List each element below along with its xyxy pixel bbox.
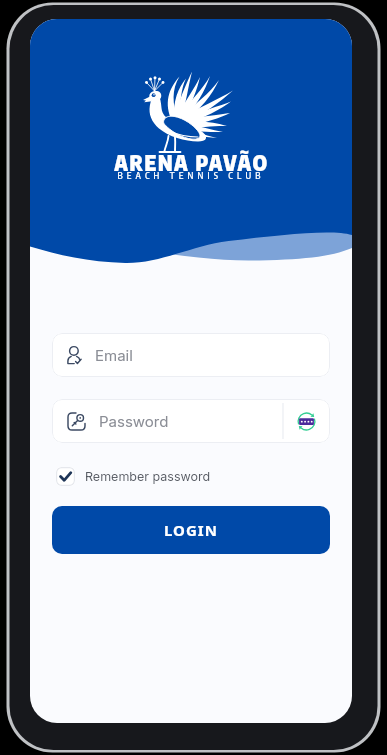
staticText: Password (99, 412, 169, 430)
staticText: Remember password (85, 469, 211, 484)
button[interactable]: Password (52, 399, 330, 443)
staticText: ARENA PAVÃO (114, 149, 269, 175)
button[interactable]: Remember password (56, 467, 211, 486)
button[interactable]: Email (52, 333, 330, 377)
button[interactable]: LOGIN (52, 506, 330, 554)
staticText: BEACH TENNIS CLUB (117, 170, 265, 181)
staticText: Email (95, 346, 133, 364)
button[interactable]: Autofill password (283, 399, 330, 443)
staticText: LOGIN (164, 520, 218, 540)
